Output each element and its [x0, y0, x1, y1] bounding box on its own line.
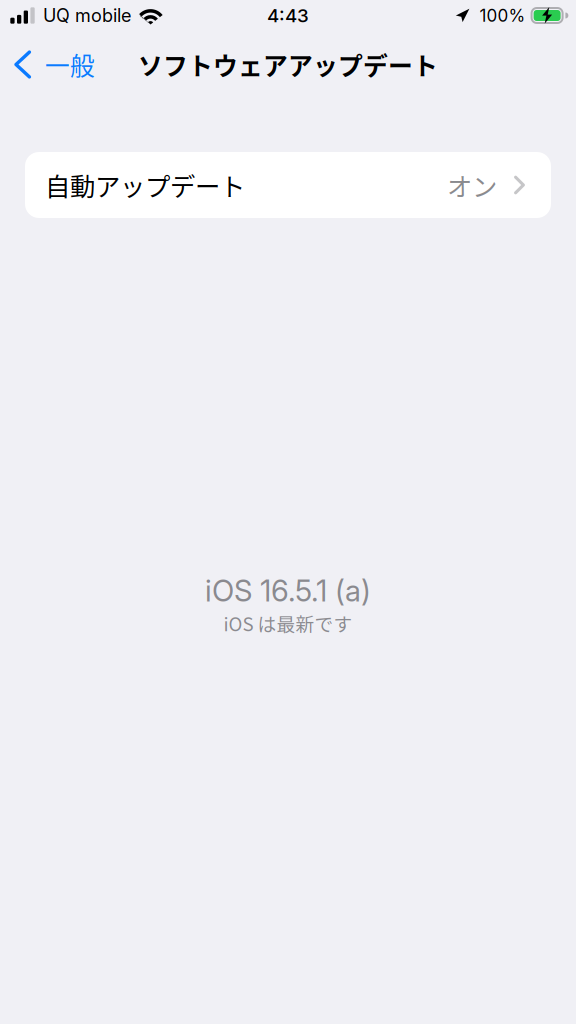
staticText: iOS は最新です [223, 609, 352, 636]
staticText: 一般 [45, 47, 95, 82]
staticText: UQ mobile [43, 5, 131, 26]
staticText: 100% [480, 5, 526, 26]
staticText: オン [447, 167, 497, 203]
staticText: ソフトウェアアップデート [138, 46, 438, 82]
staticText: iOS 16.5.1 (a) [205, 573, 371, 608]
button[interactable]: 一般 [0, 35, 111, 94]
staticText: 自動アップデート [45, 167, 245, 203]
staticText: 4:43 [267, 4, 309, 27]
button[interactable]: 自動アップデート [25, 152, 551, 218]
